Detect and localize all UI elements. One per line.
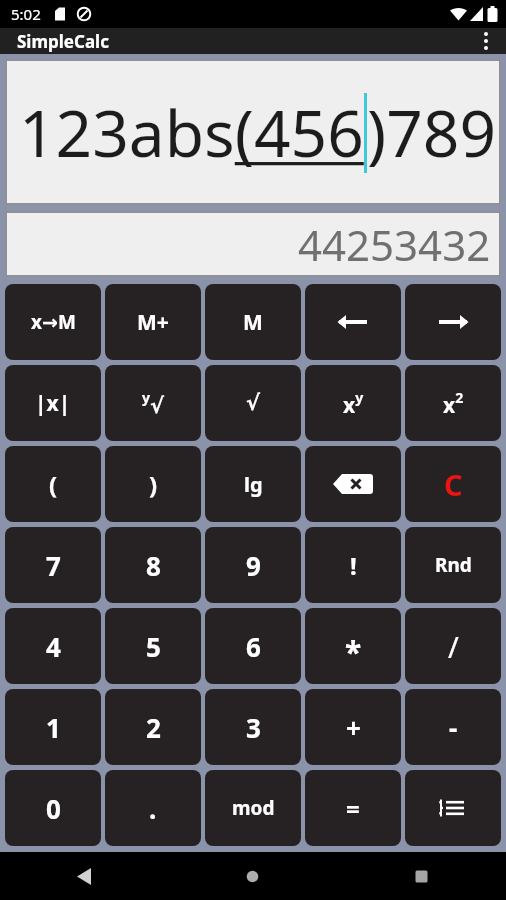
button[interactable]: ) xyxy=(105,446,201,522)
staticText: √ xyxy=(246,391,261,415)
button[interactable]: ( xyxy=(5,446,101,522)
staticText: SimpleCalc xyxy=(17,30,109,53)
staticText: ) xyxy=(149,468,158,501)
button[interactable]: 5 xyxy=(105,608,201,684)
staticText: . xyxy=(149,791,157,826)
button[interactable] xyxy=(405,284,501,360)
button[interactable]: lg xyxy=(205,446,301,522)
staticText: 7 xyxy=(46,548,61,583)
staticText: )789 xyxy=(367,89,497,176)
button[interactable] xyxy=(466,28,506,54)
staticText: = xyxy=(346,792,360,825)
button[interactable]: mod xyxy=(205,770,301,846)
button[interactable] xyxy=(168,852,337,900)
staticText: M+ xyxy=(137,308,169,337)
staticText: 5 xyxy=(146,629,161,664)
staticText: x→M xyxy=(31,309,76,335)
button[interactable]: |x| xyxy=(5,365,101,441)
staticText: y√ xyxy=(142,388,165,418)
staticText: 5:02 xyxy=(11,4,41,24)
button[interactable]: 7 xyxy=(5,527,101,603)
button[interactable]: M xyxy=(205,284,301,360)
button[interactable] xyxy=(0,852,168,900)
staticText: ! xyxy=(350,549,357,582)
button[interactable]: + xyxy=(305,689,401,765)
staticText: 44253432 xyxy=(298,216,491,273)
button[interactable]: x2 xyxy=(405,365,501,441)
staticText: 8 xyxy=(146,548,161,583)
button[interactable]: C xyxy=(405,446,501,522)
button[interactable]: 4 xyxy=(5,608,101,684)
staticText: 4 xyxy=(46,629,61,664)
staticText: 2 xyxy=(146,710,161,745)
staticText: 0 xyxy=(46,791,61,826)
button[interactable]: * xyxy=(305,608,401,684)
button[interactable]: 0 xyxy=(5,770,101,846)
staticText: * xyxy=(345,631,362,672)
button[interactable] xyxy=(305,284,401,360)
staticText: 9 xyxy=(246,548,261,583)
button[interactable]: 8 xyxy=(105,527,201,603)
button[interactable]: y√ xyxy=(105,365,201,441)
button[interactable]: M+ xyxy=(105,284,201,360)
button[interactable] xyxy=(405,770,501,846)
staticText: + xyxy=(346,710,361,745)
button[interactable]: 3 xyxy=(205,689,301,765)
staticText: lg xyxy=(244,471,263,498)
button[interactable]: . xyxy=(105,770,201,846)
button[interactable]: = xyxy=(305,770,401,846)
staticText: 123abs(456 xyxy=(19,89,364,176)
staticText: ( xyxy=(49,468,58,501)
staticText: x2 xyxy=(443,388,464,419)
button[interactable]: 9 xyxy=(205,527,301,603)
staticText: M xyxy=(243,308,263,337)
staticText: |x| xyxy=(35,389,71,418)
button[interactable]: x→M xyxy=(5,284,101,360)
staticText: C xyxy=(444,465,463,504)
button[interactable]: 1 xyxy=(5,689,101,765)
button[interactable]: - xyxy=(405,689,501,765)
staticText: xy xyxy=(343,388,364,419)
button[interactable]: 2 xyxy=(105,689,201,765)
button[interactable]: / xyxy=(405,608,501,684)
button[interactable]: xy xyxy=(305,365,401,441)
staticText: Rnd xyxy=(435,552,472,578)
button[interactable]: Rnd xyxy=(405,527,501,603)
staticText: 3 xyxy=(246,710,261,745)
staticText: - xyxy=(449,710,458,745)
staticText: mod xyxy=(232,795,275,821)
button[interactable] xyxy=(337,852,506,900)
button[interactable]: √ xyxy=(205,365,301,441)
staticText: 6 xyxy=(246,629,261,664)
staticText: / xyxy=(448,627,459,666)
button[interactable]: 6 xyxy=(205,608,301,684)
button[interactable] xyxy=(305,446,401,522)
button[interactable]: ! xyxy=(305,527,401,603)
staticText: 1 xyxy=(46,710,61,745)
